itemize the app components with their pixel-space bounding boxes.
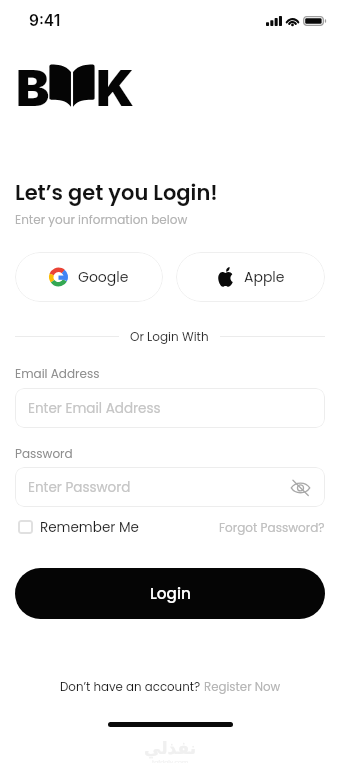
staticText: Apple bbox=[244, 267, 285, 287]
staticText: Let’s get you Login! bbox=[15, 178, 218, 207]
button[interactable]: Enter Email Address bbox=[15, 388, 325, 428]
other: Show password bbox=[290, 478, 311, 497]
staticText: Register Now bbox=[204, 679, 281, 696]
staticText: K bbox=[96, 58, 134, 118]
button[interactable]: Apple bbox=[176, 252, 325, 302]
button[interactable]: Register Now bbox=[204, 679, 281, 696]
staticText: Password bbox=[15, 445, 73, 462]
staticText: Don’t have an account? bbox=[60, 679, 204, 696]
staticText: Login bbox=[150, 583, 191, 604]
staticText: Remember Me bbox=[40, 518, 139, 536]
button[interactable]: Enter Password bbox=[15, 467, 325, 507]
button[interactable]: Google bbox=[15, 252, 163, 302]
staticText: Forgot Password? bbox=[219, 519, 325, 536]
staticText: B bbox=[16, 58, 50, 118]
staticText: Enter your information below bbox=[15, 211, 188, 228]
staticText: Or Login With bbox=[130, 328, 209, 345]
staticText: Enter Password bbox=[28, 478, 293, 497]
staticText: tafdaly.com bbox=[152, 758, 189, 763]
staticText: Email Address bbox=[15, 365, 100, 382]
staticText: نفذلي bbox=[144, 738, 197, 758]
button[interactable]: Login bbox=[15, 568, 325, 619]
button[interactable]: Forgot Password? bbox=[219, 519, 325, 536]
button[interactable]: Remember Me bbox=[18, 518, 139, 536]
staticText: Google bbox=[78, 267, 129, 287]
staticText: 9:41 bbox=[29, 11, 61, 30]
staticText: Enter Email Address bbox=[28, 399, 314, 418]
